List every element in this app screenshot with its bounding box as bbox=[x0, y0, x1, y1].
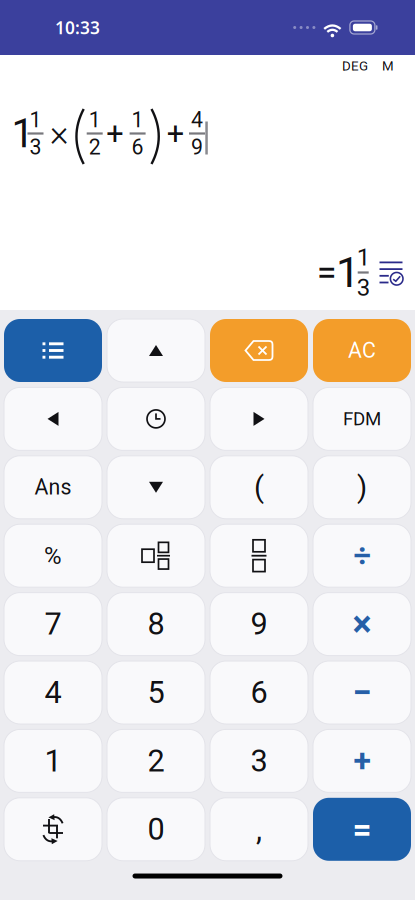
button[interactable]: 5 bbox=[107, 661, 205, 724]
button[interactable]: Up bbox=[107, 319, 205, 382]
staticText: 3 bbox=[29, 135, 41, 160]
staticText: ( bbox=[254, 470, 264, 504]
button[interactable]: Left bbox=[4, 387, 102, 450]
button[interactable]: Multiply bbox=[313, 593, 411, 656]
button[interactable]: 6 bbox=[210, 661, 308, 724]
button[interactable]: Open parenthesis bbox=[210, 456, 308, 519]
staticText: 2 bbox=[89, 135, 101, 160]
staticText: 2 bbox=[147, 743, 164, 779]
staticText: DEG bbox=[342, 58, 368, 74]
staticText: 8 bbox=[147, 606, 164, 642]
staticText: 9 bbox=[191, 135, 203, 160]
staticText: AC bbox=[348, 338, 376, 363]
button[interactable]: Fraction bbox=[210, 524, 308, 587]
button[interactable]: Percent bbox=[4, 524, 102, 587]
staticText: 4 bbox=[191, 107, 203, 132]
staticText: 3 bbox=[250, 743, 267, 779]
staticText: = bbox=[352, 810, 371, 849]
button[interactable]: Equals bbox=[313, 798, 411, 861]
staticText: FDM bbox=[343, 408, 381, 430]
button[interactable]: 4 bbox=[4, 661, 102, 724]
staticText: × bbox=[352, 603, 371, 645]
staticText: 1 bbox=[357, 243, 370, 271]
staticText: = bbox=[317, 251, 337, 294]
staticText: 1 bbox=[89, 107, 101, 132]
button[interactable]: 9 bbox=[210, 593, 308, 656]
button[interactable]: All clear bbox=[313, 319, 411, 382]
button[interactable]: Menu bbox=[4, 319, 102, 382]
button[interactable]: FDM bbox=[313, 387, 411, 450]
button[interactable]: Store result bbox=[379, 260, 403, 285]
button[interactable]: Rotate layout bbox=[4, 798, 102, 861]
button[interactable]: 7 bbox=[4, 593, 102, 656]
button[interactable]: History bbox=[107, 387, 205, 450]
staticText: + bbox=[353, 742, 370, 780]
staticText: 10:33 bbox=[55, 16, 100, 39]
button[interactable]: Decimal separator bbox=[210, 798, 308, 861]
staticText: 6 bbox=[250, 674, 267, 710]
staticText: 1 bbox=[336, 247, 360, 297]
staticText: 0 bbox=[147, 811, 164, 847]
staticText: 3 bbox=[357, 274, 370, 302]
staticText: ) bbox=[357, 470, 367, 504]
staticText: × bbox=[50, 112, 69, 155]
button[interactable]: Plus bbox=[313, 729, 411, 792]
button[interactable]: Divide bbox=[313, 524, 411, 587]
staticText: 1 bbox=[11, 110, 33, 157]
button[interactable]: 0 bbox=[107, 798, 205, 861]
button[interactable]: Backspace bbox=[210, 319, 308, 382]
staticText: 1 bbox=[29, 107, 41, 132]
button[interactable]: Down bbox=[107, 456, 205, 519]
button[interactable]: 1 bbox=[4, 729, 102, 792]
staticText: 1 bbox=[132, 107, 144, 132]
button[interactable]: Mixed fraction bbox=[107, 524, 205, 587]
staticText: 1 bbox=[44, 743, 61, 779]
staticText: M bbox=[382, 58, 394, 74]
staticText: , bbox=[256, 811, 262, 847]
button[interactable]: 2 bbox=[107, 729, 205, 792]
staticText: 4 bbox=[44, 674, 61, 710]
button[interactable]: 8 bbox=[107, 593, 205, 656]
staticText: − bbox=[352, 672, 371, 713]
staticText: 6 bbox=[132, 135, 144, 160]
button[interactable]: Minus bbox=[313, 661, 411, 724]
button[interactable]: Close parenthesis bbox=[313, 456, 411, 519]
button[interactable]: Right bbox=[210, 387, 308, 450]
staticText: Ans bbox=[34, 475, 71, 500]
button[interactable]: 3 bbox=[210, 729, 308, 792]
staticText: 7 bbox=[44, 606, 61, 642]
staticText: ÷ bbox=[353, 538, 370, 574]
staticText: 9 bbox=[250, 606, 267, 642]
staticText: 5 bbox=[147, 674, 164, 710]
staticText: + bbox=[106, 115, 123, 151]
button[interactable]: Ans bbox=[4, 456, 102, 519]
staticText: + bbox=[167, 115, 184, 151]
staticText: % bbox=[44, 542, 62, 570]
